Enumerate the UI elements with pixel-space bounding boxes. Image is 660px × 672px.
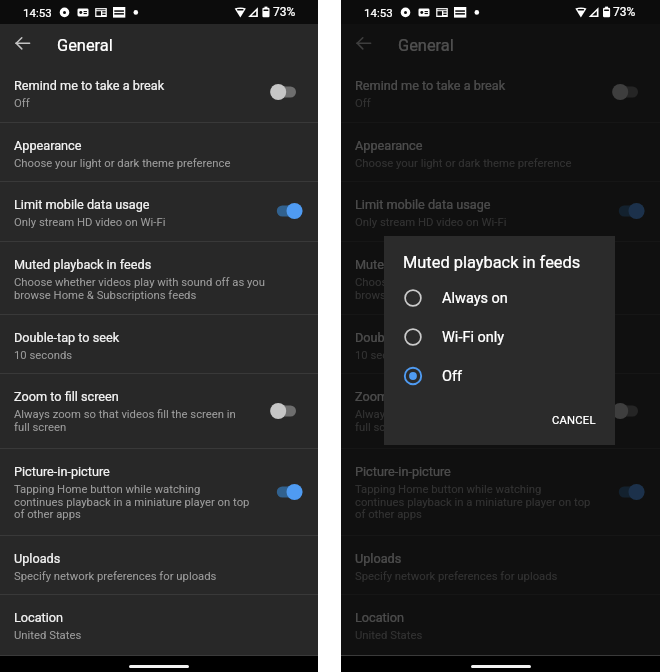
staticText: Zoom to fill screen bbox=[355, 389, 460, 404]
button[interactable]: Zoom to fill screen bbox=[341, 373, 660, 448]
staticText: Uploads bbox=[14, 551, 61, 566]
button[interactable]: Double-tap to seek bbox=[341, 314, 660, 373]
staticText: Only stream HD video on Wi-Fi bbox=[14, 216, 166, 229]
staticText: Uploads bbox=[355, 551, 402, 566]
staticText: Always on bbox=[442, 290, 508, 307]
button[interactable]: Zoom to fill screen bbox=[267, 399, 303, 423]
button[interactable]: Remind me to take a break bbox=[267, 80, 303, 104]
button[interactable]: Navigate up bbox=[4, 24, 42, 62]
staticText: Only stream HD video on Wi-Fi bbox=[355, 216, 507, 229]
staticText: Picture-in-picture bbox=[14, 464, 110, 479]
button[interactable]: Location bbox=[0, 594, 318, 655]
staticText: Off bbox=[442, 368, 463, 385]
staticText: 14:53 bbox=[364, 6, 393, 19]
staticText: Appearance bbox=[355, 138, 423, 153]
staticText: 73% bbox=[613, 5, 636, 19]
staticText: General bbox=[57, 36, 113, 55]
staticText: Double-tap to seek bbox=[14, 330, 120, 345]
button[interactable]: Always on bbox=[384, 278, 615, 317]
staticText: Always zoom so that videos fill the scre… bbox=[355, 408, 577, 434]
staticText: United States bbox=[355, 629, 423, 642]
staticText: Location bbox=[14, 610, 64, 625]
staticText: Choose whether videos play with sound of… bbox=[14, 276, 265, 302]
button[interactable]: Uploads bbox=[0, 535, 318, 594]
staticText: Appearance bbox=[14, 138, 82, 153]
button[interactable]: Off bbox=[384, 356, 615, 395]
button[interactable]: Muted playback in feeds bbox=[341, 241, 660, 314]
button[interactable]: Picture-in-picture bbox=[0, 448, 318, 535]
staticText: Remind me to take a break bbox=[14, 78, 165, 93]
staticText: General bbox=[398, 36, 454, 55]
staticText: Zoom to fill screen bbox=[14, 389, 119, 404]
staticText: Muted playback in feeds bbox=[14, 257, 152, 272]
staticText: 73% bbox=[273, 5, 296, 19]
button[interactable]: Appearance bbox=[0, 122, 318, 181]
staticText: 10 seconds bbox=[14, 349, 73, 362]
staticText: Location bbox=[355, 610, 405, 625]
button[interactable]: Remind me to take a break bbox=[609, 80, 645, 104]
button[interactable]: Muted playback in feeds bbox=[0, 241, 318, 314]
button[interactable]: Limit mobile data usage bbox=[341, 181, 660, 241]
staticText: Off bbox=[355, 97, 371, 110]
button[interactable]: Picture-in-picture bbox=[609, 480, 645, 504]
button[interactable]: Picture-in-picture bbox=[341, 448, 660, 535]
staticText: 14:53 bbox=[23, 6, 52, 19]
staticText: Picture-in-picture bbox=[355, 464, 451, 479]
staticText: Muted playback in feeds bbox=[403, 253, 581, 272]
button[interactable]: Limit mobile data usage bbox=[609, 199, 645, 223]
button[interactable]: Navigate up bbox=[345, 24, 383, 62]
staticText: Choose whether videos play with sound of… bbox=[355, 276, 606, 302]
staticText: United States bbox=[14, 629, 82, 642]
button[interactable]: Zoom to fill screen bbox=[609, 399, 645, 423]
button[interactable]: Remind me to take a break bbox=[0, 62, 318, 122]
button[interactable]: Location bbox=[341, 594, 660, 655]
button[interactable]: CANCEL bbox=[548, 408, 600, 433]
staticText: Choose your light or dark theme preferen… bbox=[355, 157, 572, 170]
staticText: Double-tap to seek bbox=[355, 330, 461, 345]
staticText: Specify network preferences for uploads bbox=[355, 570, 558, 583]
button[interactable]: Double-tap to seek bbox=[0, 314, 318, 373]
button[interactable]: Appearance bbox=[341, 122, 660, 181]
staticText: Tapping Home button while watching conti… bbox=[355, 483, 591, 521]
staticText: Muted playback in feeds bbox=[355, 257, 493, 272]
button[interactable]: Picture-in-picture bbox=[267, 480, 303, 504]
staticText: Tapping Home button while watching conti… bbox=[14, 483, 250, 521]
staticText: CANCEL bbox=[552, 414, 596, 427]
button[interactable]: Remind me to take a break bbox=[341, 62, 660, 122]
button[interactable]: Wi-Fi only bbox=[384, 317, 615, 356]
staticText: Off bbox=[14, 97, 30, 110]
staticText: Remind me to take a break bbox=[355, 78, 506, 93]
staticText: 10 seconds bbox=[355, 349, 414, 362]
button[interactable]: Limit mobile data usage bbox=[0, 181, 318, 241]
staticText: Choose your light or dark theme preferen… bbox=[14, 157, 231, 170]
staticText: Limit mobile data usage bbox=[14, 197, 150, 212]
button[interactable]: Zoom to fill screen bbox=[0, 373, 318, 448]
staticText: Always zoom so that videos fill the scre… bbox=[14, 408, 236, 434]
button[interactable]: Uploads bbox=[341, 535, 660, 594]
staticText: Limit mobile data usage bbox=[355, 197, 491, 212]
staticText: Wi-Fi only bbox=[442, 329, 505, 346]
staticText: Specify network preferences for uploads bbox=[14, 570, 217, 583]
button[interactable]: Limit mobile data usage bbox=[267, 199, 303, 223]
